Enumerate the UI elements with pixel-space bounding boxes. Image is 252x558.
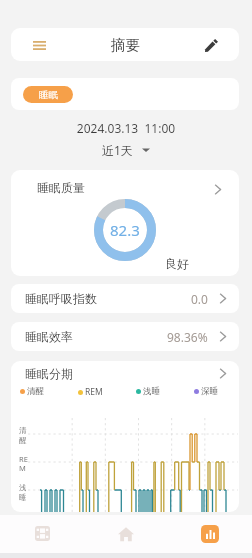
staticText: 清醒 bbox=[19, 426, 28, 445]
staticText: 良好 bbox=[165, 256, 189, 271]
staticText: 睡眠呼吸指数 bbox=[25, 291, 97, 306]
staticText: 睡眠分期 bbox=[25, 366, 73, 381]
button[interactable]: 睡眠效率 bbox=[11, 322, 239, 351]
staticText: 浅睡 bbox=[143, 386, 160, 397]
button[interactable]: Edit bbox=[202, 36, 220, 54]
button[interactable]: Home bbox=[84, 515, 168, 552]
button[interactable]: 睡眠质量 bbox=[11, 170, 239, 276]
button[interactable]: Menu bbox=[30, 36, 48, 54]
button[interactable]: 睡眠 bbox=[23, 86, 73, 103]
staticText: 82.3 bbox=[110, 220, 140, 240]
staticText: 睡眠质量 bbox=[37, 180, 85, 195]
button[interactable]: Statistics bbox=[201, 525, 219, 543]
staticText: 浅睡 bbox=[19, 483, 28, 502]
button[interactable]: Records bbox=[0, 515, 84, 552]
staticText: REM bbox=[85, 386, 103, 398]
staticText: 睡眠效率 bbox=[25, 329, 73, 344]
staticText: 0.0 bbox=[191, 291, 208, 307]
staticText: 摘要 bbox=[111, 36, 140, 54]
staticText: 近1天 bbox=[102, 142, 133, 158]
staticText: 2024.03.13 11:00 bbox=[0, 120, 252, 136]
staticText: 睡眠 bbox=[39, 89, 58, 101]
staticText: 深睡 bbox=[201, 386, 218, 397]
button[interactable]: 睡眠呼吸指数 bbox=[11, 284, 239, 313]
staticText: REM bbox=[19, 454, 28, 474]
button[interactable]: 近1天 bbox=[98, 142, 154, 158]
staticText: 98.36% bbox=[167, 329, 208, 345]
staticText: 清醒 bbox=[27, 386, 44, 397]
button[interactable]: 睡眠分期 bbox=[11, 361, 239, 386]
